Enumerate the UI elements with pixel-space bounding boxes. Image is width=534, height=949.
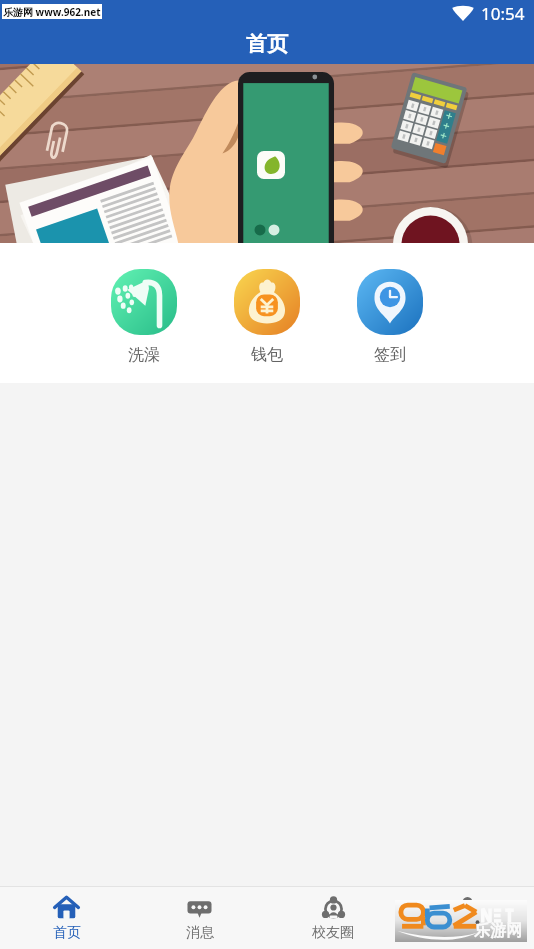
staticText: 签到: [374, 345, 406, 365]
staticText: 洗澡: [128, 345, 160, 365]
staticText: 首页: [53, 924, 81, 942]
staticText: 我的: [453, 924, 481, 942]
staticText: 乐游网 www.962.net: [3, 5, 101, 19]
button[interactable]: 我的: [400, 887, 534, 949]
staticText: 乐游网: [474, 921, 522, 941]
staticText: 消息: [186, 924, 214, 942]
staticText: 10:54: [481, 2, 525, 25]
staticText: 校友圈: [312, 924, 354, 942]
button[interactable]: 钱包: [234, 269, 300, 365]
button[interactable]: 洗澡: [111, 269, 177, 365]
staticText: 首页: [246, 31, 288, 57]
staticText: 钱包: [251, 345, 283, 365]
button[interactable]: 消息: [133, 887, 266, 949]
button[interactable]: 首页: [0, 887, 133, 949]
button[interactable]: 签到: [357, 269, 423, 365]
button[interactable]: 校友圈: [266, 887, 400, 949]
